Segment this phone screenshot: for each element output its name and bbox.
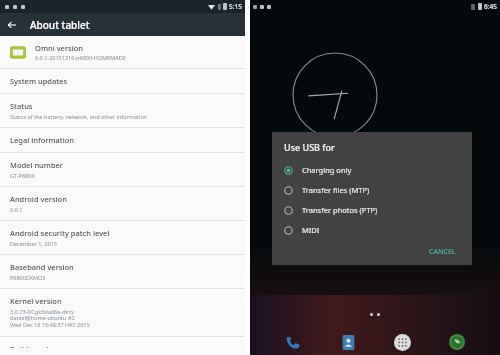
staticText: Android security patch level	[10, 228, 110, 238]
staticText: 6:45	[484, 2, 497, 11]
staticText: Android version	[10, 194, 67, 204]
staticText: 3.0.73-DCgk3dad6e-dirty daniel@home-ubun…	[10, 308, 90, 329]
button[interactable]: Transfer photos (PTP)	[284, 200, 462, 220]
staticText: Omni version	[35, 43, 84, 53]
button[interactable]: Android security patch level	[0, 221, 245, 254]
staticText: 6.0.1	[10, 206, 23, 213]
staticText: 6.0.1-20151216-p6800-HOMEMADE	[35, 54, 126, 61]
staticText: Charging only	[302, 165, 352, 175]
button[interactable]: Legal information	[0, 128, 245, 152]
button[interactable]: Android version	[0, 187, 245, 220]
button[interactable]: Status	[0, 94, 245, 127]
button[interactable]: Clock widget	[292, 52, 378, 138]
staticText: About tablet	[30, 18, 90, 32]
button[interactable]: MIDI	[284, 220, 462, 240]
staticText: Transfer photos (PTP)	[302, 205, 378, 215]
button[interactable]: Charging only	[284, 160, 462, 180]
staticText: 5:15	[229, 2, 242, 11]
staticText: MIDI	[302, 225, 320, 235]
button[interactable]: Transfer files (MTP)	[284, 180, 462, 200]
staticText: Transfer files (MTP)	[302, 185, 370, 195]
button[interactable]: Omni version	[0, 36, 245, 68]
button[interactable]: Baseband version	[0, 255, 245, 288]
button[interactable]: CANCEL	[423, 243, 462, 261]
staticText: December 1, 2015	[10, 240, 57, 247]
staticText: Build number	[10, 344, 59, 348]
staticText: Baseband version	[10, 262, 74, 272]
staticText: Model number	[10, 160, 64, 170]
staticText: Status of the battery, network, and othe…	[10, 113, 148, 120]
staticText: Kernel version	[10, 296, 62, 306]
staticText: Use USB for	[284, 141, 335, 153]
button[interactable]: Kernel version	[0, 289, 245, 336]
button[interactable]: Browser	[446, 331, 468, 353]
button[interactable]: Back	[0, 13, 23, 36]
staticText: System updates	[10, 76, 68, 86]
button[interactable]: Contacts	[337, 331, 359, 353]
staticText: P6800DXMO3	[10, 274, 46, 281]
button[interactable]: Phone	[282, 331, 304, 353]
staticText: CANCEL	[429, 247, 456, 257]
staticText: Legal information	[10, 135, 74, 145]
button[interactable]: Model number	[0, 153, 245, 186]
staticText: GT-P6800	[10, 172, 35, 179]
button[interactable]: System updates	[0, 69, 245, 93]
button[interactable]: Build number	[0, 337, 245, 355]
button[interactable]: Apps	[391, 331, 413, 353]
staticText: Status	[10, 101, 33, 111]
